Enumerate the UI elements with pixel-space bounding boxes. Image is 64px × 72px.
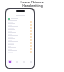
button[interactable] [8,32,32,35]
button[interactable] [8,23,32,26]
button[interactable] [8,41,32,44]
button[interactable] [8,26,32,29]
button[interactable] [8,38,32,41]
button[interactable] [8,20,32,23]
button[interactable]: Practice [13,60,20,68]
button[interactable] [8,44,32,47]
staticText: Learn Chinese [20,0,44,3]
button[interactable] [8,29,32,32]
button[interactable]: Library [20,60,27,68]
staticText: Handwriting [22,3,43,7]
button[interactable]: Profile [8,17,32,20]
button[interactable] [8,35,32,38]
button[interactable] [8,47,32,50]
button[interactable] [8,50,32,53]
button[interactable]: Profile [27,60,34,68]
button[interactable]: Home [6,60,13,68]
